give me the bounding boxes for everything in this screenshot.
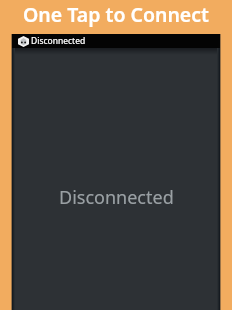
staticText: Disconnected [59, 185, 174, 210]
other: App icon [18, 36, 29, 47]
button[interactable]: App icon [12, 34, 220, 48]
button[interactable]: One Tap to Connect [0, 0, 232, 28]
staticText: Disconnected [31, 35, 86, 47]
staticText: One Tap to Connect [23, 1, 209, 28]
